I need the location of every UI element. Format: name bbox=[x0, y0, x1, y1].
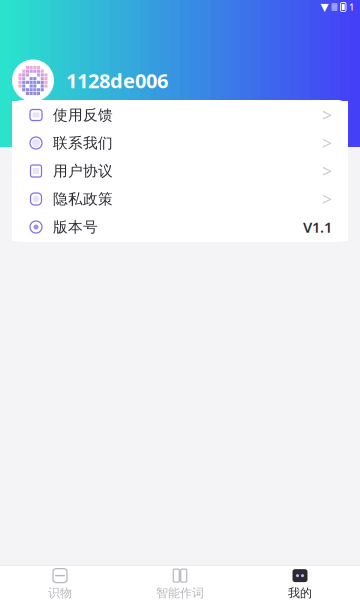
staticText: 隐私政策 bbox=[53, 190, 113, 208]
button[interactable]: 隐私政策 bbox=[12, 185, 348, 213]
staticText: ▼ bbox=[320, 1, 328, 13]
button[interactable]: 用户协议 bbox=[12, 157, 348, 185]
staticText: > bbox=[322, 187, 332, 210]
staticText: > bbox=[322, 159, 332, 182]
staticText: > bbox=[322, 131, 332, 154]
staticText: 1 bbox=[349, 1, 354, 13]
staticText: 智能作词 bbox=[156, 586, 204, 600]
staticText: 识物 bbox=[48, 586, 72, 600]
button[interactable]: 我的 bbox=[240, 567, 360, 600]
button[interactable]: 使用反馈 bbox=[12, 101, 348, 129]
staticText: > bbox=[322, 103, 332, 126]
staticText: 联系我们 bbox=[53, 134, 113, 152]
staticText: 版本号 bbox=[53, 218, 98, 236]
button[interactable]: 识物 bbox=[0, 567, 120, 600]
button[interactable]: 智能作词 bbox=[120, 567, 240, 600]
button[interactable]: 版本号 bbox=[12, 213, 348, 241]
staticText: 我的 bbox=[288, 586, 312, 600]
staticText: 用户协议 bbox=[53, 162, 113, 180]
staticText: 使用反馈 bbox=[53, 106, 113, 124]
staticText: 1128de006 bbox=[66, 67, 168, 94]
staticText: V1.1 bbox=[303, 217, 332, 237]
button[interactable]: 联系我们 bbox=[12, 129, 348, 157]
